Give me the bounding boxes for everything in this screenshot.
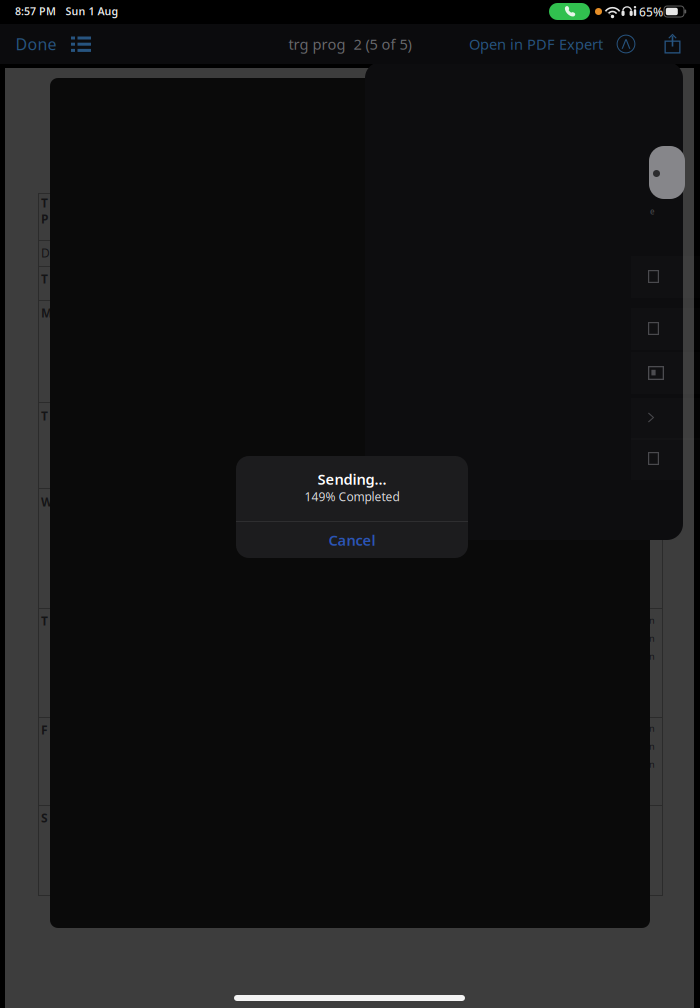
button[interactable]: Share option: [631, 256, 700, 298]
staticText: n: [649, 650, 655, 662]
staticText: Done: [15, 33, 56, 55]
staticText: P: [41, 211, 48, 227]
staticText: W: [41, 494, 53, 510]
staticText: 8:57 PM: [15, 4, 56, 18]
staticText: T: [41, 613, 48, 629]
button[interactable]: Share option: [631, 352, 700, 394]
button[interactable]: Done: [10, 24, 62, 64]
staticText: Open in PDF Expert: [469, 34, 603, 54]
staticText: 65%: [639, 4, 663, 20]
staticText: Cancel: [328, 530, 375, 550]
button[interactable]: Thumbnails: [61, 24, 102, 64]
staticText: S: [41, 810, 48, 826]
button[interactable]: Share option: [631, 308, 700, 350]
staticText: F: [41, 722, 48, 738]
staticText: n: [649, 722, 655, 734]
button[interactable]: Share option: [631, 438, 700, 480]
button[interactable]: AirDrop contact: [649, 146, 685, 199]
staticText: 149% Completed: [304, 488, 399, 504]
staticText: n: [649, 758, 655, 770]
staticText: T: [41, 271, 48, 287]
staticText: n: [649, 740, 655, 752]
button[interactable]: Markup: [608, 24, 644, 64]
button[interactable]: Share option: [631, 398, 700, 440]
button[interactable]: Share: [655, 24, 691, 64]
button[interactable]: Open in PDF Expert: [460, 24, 612, 64]
staticText: Sun 1 Aug: [65, 4, 118, 18]
button[interactable]: Cancel: [236, 522, 468, 558]
staticText: n: [649, 632, 655, 644]
staticText: D: [41, 245, 50, 261]
staticText: e: [650, 206, 655, 217]
staticText: trg prog 2 (5 of 5): [288, 34, 411, 54]
staticText: Sending...: [317, 469, 386, 489]
staticText: T: [41, 195, 48, 211]
staticText: M: [41, 305, 52, 321]
staticText: T: [41, 408, 48, 424]
staticText: n: [649, 614, 655, 626]
